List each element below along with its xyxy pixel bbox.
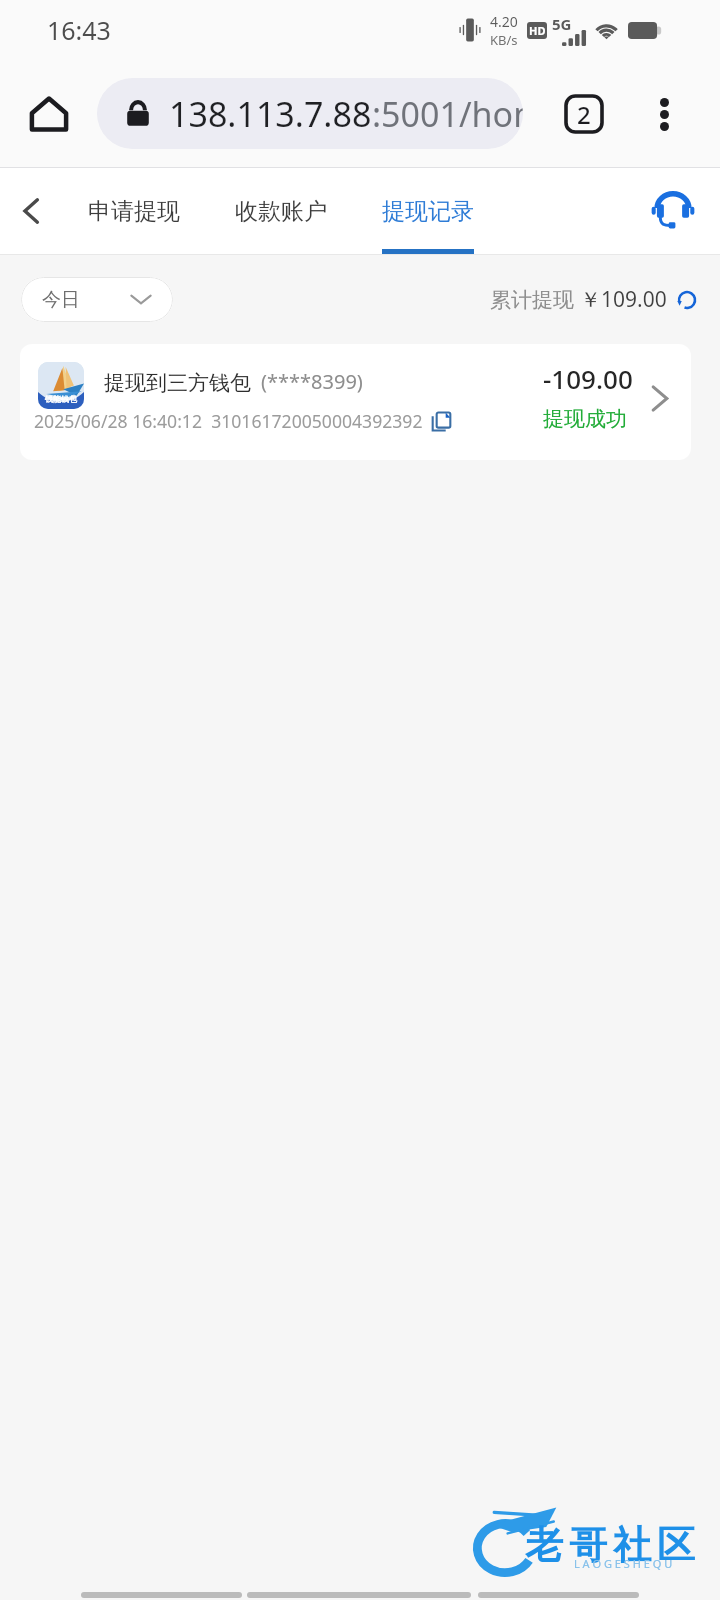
staticText: 5G — [552, 14, 572, 34]
staticText: L A O G E S H E Q U — [574, 1556, 673, 1571]
staticText: KB/s — [490, 31, 518, 49]
staticText: ￥109.00 — [580, 285, 667, 314]
button[interactable]: 申请提现 — [88, 168, 180, 254]
staticText: 2 — [577, 98, 591, 131]
staticText: 提现记录 — [382, 197, 474, 226]
staticText: (****8399) — [261, 368, 363, 395]
button[interactable]: Copy transaction id — [431, 411, 452, 432]
staticText: 提现成功 — [543, 406, 627, 432]
button[interactable]: 今日 — [21, 277, 173, 322]
button[interactable]: Back — [0, 168, 62, 254]
button[interactable]: More options — [630, 80, 698, 148]
staticText: 2025/06/28 16:40:12 31016172005000439239… — [34, 409, 423, 433]
button[interactable]: 收款账户 — [235, 168, 327, 254]
button[interactable]: Home — [12, 77, 85, 150]
staticText: -109.00 — [543, 361, 633, 396]
staticText: 提现到三方钱包 — [104, 370, 251, 396]
button[interactable]: 提现记录 — [382, 168, 474, 254]
staticText: 4.20 — [490, 12, 518, 31]
button[interactable]: Refresh — [675, 288, 699, 312]
staticText: 老哥社区 — [522, 1521, 698, 1569]
staticText: 138.113.7.88 — [169, 91, 372, 137]
staticText: HD — [529, 23, 546, 38]
other: View details — [643, 380, 677, 416]
staticText: 申请提现 — [88, 197, 180, 226]
button[interactable]: Tabs — [550, 80, 618, 148]
button[interactable]: 138.113.7.88 — [97, 78, 523, 149]
button[interactable]: 钱能钱包 — [20, 344, 691, 460]
staticText: 16:43 — [47, 13, 111, 47]
staticText: 累计提现 — [490, 287, 574, 313]
staticText: :5001/hom — [372, 91, 523, 137]
staticText: 今日 — [42, 288, 80, 312]
button[interactable]: Customer service — [640, 178, 706, 244]
staticText: 收款账户 — [235, 197, 327, 226]
staticText: 钱能钱包 — [45, 394, 77, 404]
